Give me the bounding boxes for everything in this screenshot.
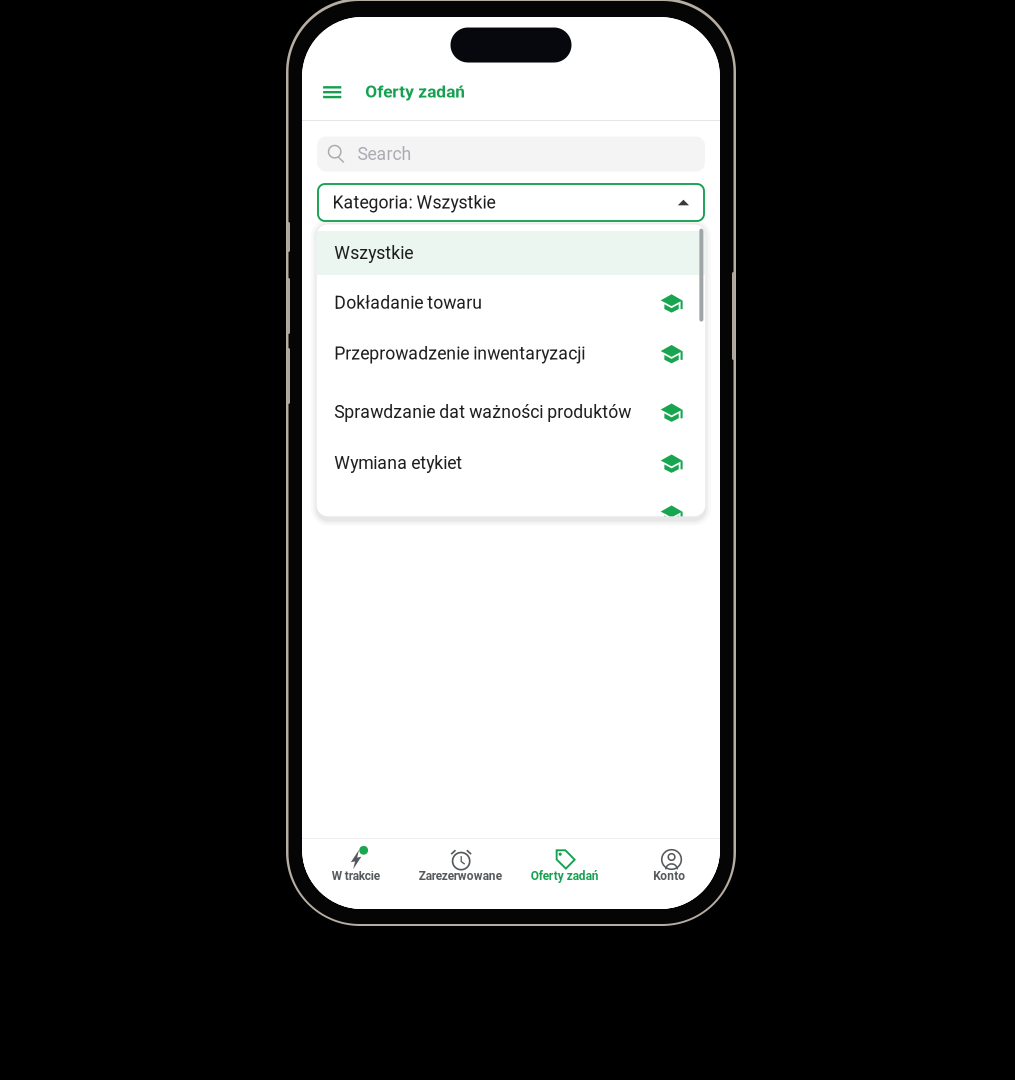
- staticText: Oferty zadań: [365, 81, 465, 102]
- staticText: Wymiana etykiet: [334, 453, 462, 473]
- staticText: Oferty zadań: [531, 869, 599, 883]
- button[interactable]: Sprawdzanie dat ważności produktów: [317, 390, 705, 434]
- button[interactable]: Kategoria: Wszystkie: [318, 184, 704, 221]
- staticText: Konto: [653, 869, 685, 883]
- button[interactable]: Wymiana etykiet: [317, 441, 705, 485]
- staticText: Search: [357, 144, 411, 164]
- staticText: W trakcie: [332, 869, 380, 883]
- button[interactable]: W trakcie: [303, 845, 408, 911]
- staticText: Przeprowadzenie inwentaryzacji: [334, 343, 585, 364]
- staticText: Kategoria: Wszystkie: [332, 192, 495, 213]
- button[interactable]: Zarezerwowane: [408, 845, 512, 911]
- button[interactable]: Oferty zadań: [512, 845, 617, 911]
- staticText: Dokładanie towaru: [334, 292, 482, 313]
- staticText: Wszystkie: [334, 243, 413, 263]
- button[interactable]: Wszystkie: [317, 231, 705, 275]
- staticText: Sprawdzanie dat ważności produktów: [334, 402, 631, 422]
- button[interactable]: [317, 492, 705, 536]
- button[interactable]: Menu: [312, 75, 352, 109]
- button[interactable]: Dokładanie towaru: [317, 281, 705, 325]
- staticText: Zarezerwowane: [419, 869, 502, 883]
- button[interactable]: Przeprowadzenie inwentaryzacji: [317, 331, 705, 375]
- button[interactable]: Konto: [617, 845, 721, 911]
